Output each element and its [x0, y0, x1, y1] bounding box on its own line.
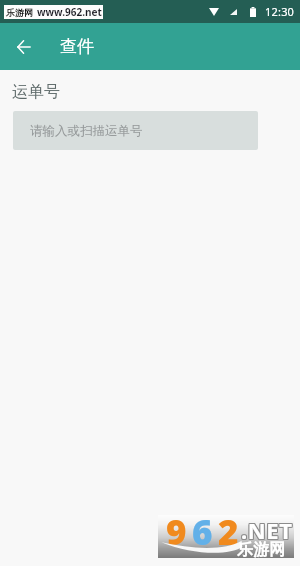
- staticText: 9: [166, 508, 188, 551]
- staticText: .NET: [242, 515, 294, 545]
- staticText: 请输入或扫描运单号: [30, 123, 143, 139]
- staticText: .NET: [240, 514, 292, 544]
- staticText: 运单号: [12, 82, 60, 102]
- staticText: .NET: [242, 514, 294, 544]
- staticText: .NET: [241, 515, 293, 545]
- staticText: 6: [192, 508, 214, 551]
- staticText: .NET: [240, 516, 292, 546]
- staticText: 12:30: [265, 4, 295, 19]
- staticText: www.962.net: [37, 5, 102, 19]
- staticText: .NET: [242, 516, 294, 546]
- button[interactable]: Back: [10, 33, 38, 61]
- staticText: .NET: [241, 514, 293, 544]
- staticText: 乐游网: [237, 540, 285, 560]
- staticText: .NET: [240, 515, 292, 545]
- staticText: 查件: [60, 36, 94, 57]
- staticText: 2: [218, 508, 240, 551]
- staticText: .NET: [241, 516, 293, 546]
- button[interactable]: 请输入或扫描运单号: [13, 111, 258, 150]
- staticText: 乐游网: [6, 7, 33, 18]
